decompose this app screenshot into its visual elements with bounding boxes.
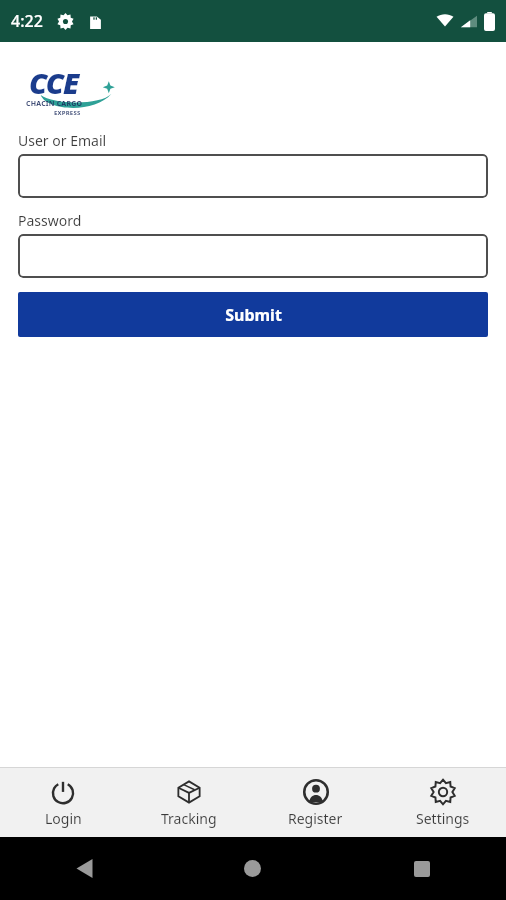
button[interactable]: Home [168,837,337,900]
staticText: CHACIN CARGO [26,99,83,109]
staticText: Tracking [161,809,217,828]
staticText: Password [18,211,82,230]
button[interactable]: Register [252,768,379,837]
staticText: Settings [416,809,470,828]
staticText: Submit [225,304,282,326]
button[interactable]: Tracking [126,768,252,837]
button[interactable]: Settings [379,768,506,837]
button[interactable] [18,154,488,198]
button[interactable]: Back [0,837,168,900]
staticText: 4:22 [11,10,43,32]
button[interactable]: Submit [18,292,488,337]
button[interactable] [18,234,488,278]
button[interactable]: Recent apps [337,837,506,900]
staticText: EXPRESS [54,109,81,117]
staticText: CCE [29,63,79,102]
staticText: User or Email [18,131,107,150]
staticText: Register [288,809,343,828]
button[interactable]: Login [0,768,126,837]
staticText: Login [45,809,82,828]
